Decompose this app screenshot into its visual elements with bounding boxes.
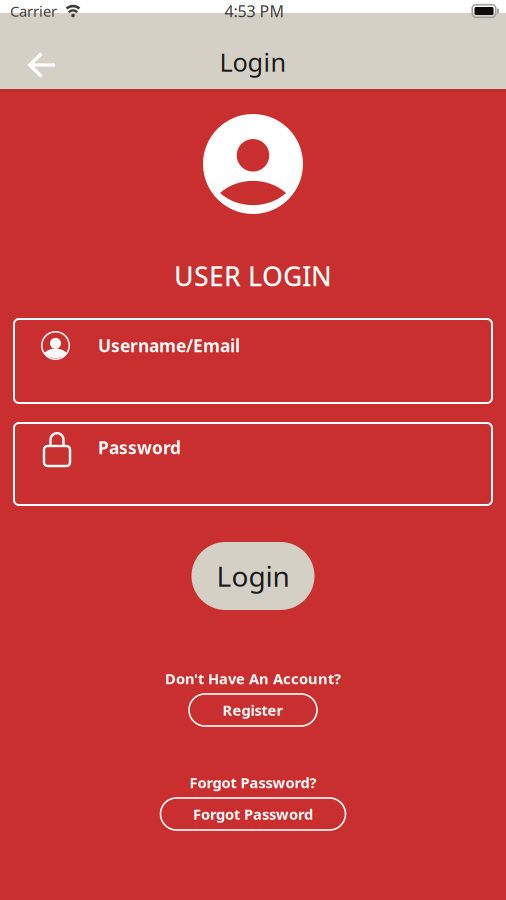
staticText: Username/Email [98,334,240,357]
staticText: Login [219,45,286,79]
button[interactable]: Register [189,694,317,726]
staticText: Forgot Password? [189,773,316,792]
staticText: USER LOGIN [174,258,332,294]
button[interactable]: Username/Email [14,319,492,403]
staticText: 4:53 PM [224,0,284,22]
staticText: Carrier [10,1,57,21]
staticText: Don't Have An Account? [165,669,341,688]
staticText: Password [98,436,181,459]
button[interactable]: Login [191,542,314,610]
button[interactable]: Password [14,423,492,505]
staticText: Forgot Password [193,804,313,824]
button[interactable]: Back [0,35,73,89]
button[interactable]: Forgot Password [160,798,345,830]
staticText: Register [222,700,283,720]
staticText: Login [216,557,289,595]
